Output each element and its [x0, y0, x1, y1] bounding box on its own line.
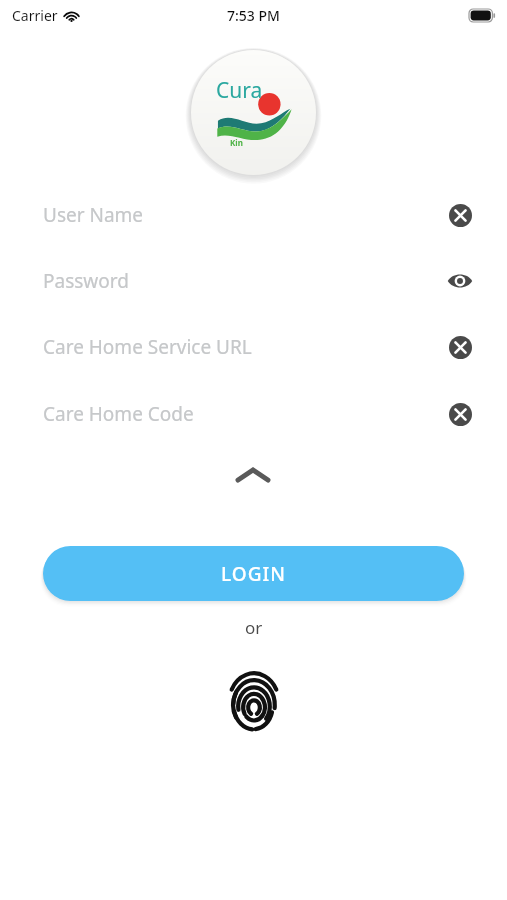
button[interactable]: Care Home Service URL — [0, 322, 507, 372]
button[interactable]: Clear text — [445, 399, 475, 429]
staticText: Care Home Service URL — [43, 334, 252, 360]
staticText: Kin — [230, 137, 243, 148]
button[interactable]: Login with fingerprint — [218, 666, 290, 744]
staticText: 7:53 PM — [227, 6, 280, 25]
button[interactable]: Show password — [445, 266, 475, 296]
staticText: Care Home Code — [43, 401, 194, 427]
button[interactable]: LOGIN — [43, 546, 464, 601]
staticText: Password — [43, 268, 129, 294]
staticText: User Name — [43, 202, 144, 228]
staticText: or — [245, 616, 263, 639]
button[interactable]: Collapse — [220, 452, 286, 498]
button[interactable]: User Name — [0, 190, 507, 240]
button[interactable]: Password — [0, 256, 507, 306]
staticText: Carrier — [12, 6, 58, 25]
button[interactable]: Clear text — [445, 200, 475, 230]
staticText: Cura — [216, 76, 263, 105]
button[interactable]: Care Home Code — [0, 389, 507, 439]
staticText: LOGIN — [221, 561, 286, 587]
button[interactable]: Clear text — [445, 332, 475, 362]
